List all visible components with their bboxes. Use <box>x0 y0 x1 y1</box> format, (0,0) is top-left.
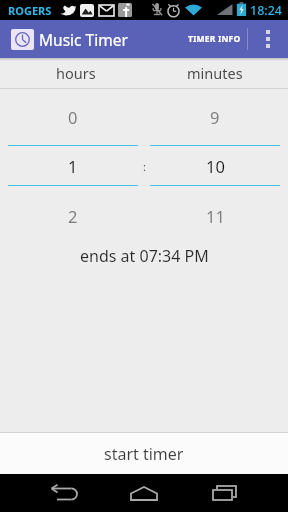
button[interactable]: 1 <box>8 146 138 185</box>
staticText: 0 <box>68 106 78 128</box>
staticText: ends at 07:34 PM <box>80 245 209 262</box>
button[interactable]: start timer <box>0 433 288 474</box>
button[interactable]: 10 <box>150 146 280 185</box>
staticText: minutes <box>187 63 243 83</box>
staticText: 9 <box>210 106 220 128</box>
staticText: start timer <box>104 443 184 465</box>
staticText: 2 <box>68 205 78 227</box>
staticText: ROGERS <box>8 3 52 18</box>
button[interactable]: TIMER INFO <box>180 20 247 58</box>
staticText: 10 <box>206 155 225 177</box>
staticText: : <box>143 159 146 174</box>
staticText: hours <box>56 63 96 83</box>
staticText: Music Timer <box>39 29 128 50</box>
staticText: 11 <box>206 205 225 227</box>
button[interactable] <box>96 474 192 512</box>
staticText: 1 <box>68 155 78 177</box>
button[interactable] <box>192 474 288 512</box>
staticText: 18:24 <box>250 2 283 19</box>
button[interactable] <box>0 474 96 512</box>
staticText: TIMER INFO <box>188 33 241 45</box>
button[interactable] <box>248 20 288 58</box>
